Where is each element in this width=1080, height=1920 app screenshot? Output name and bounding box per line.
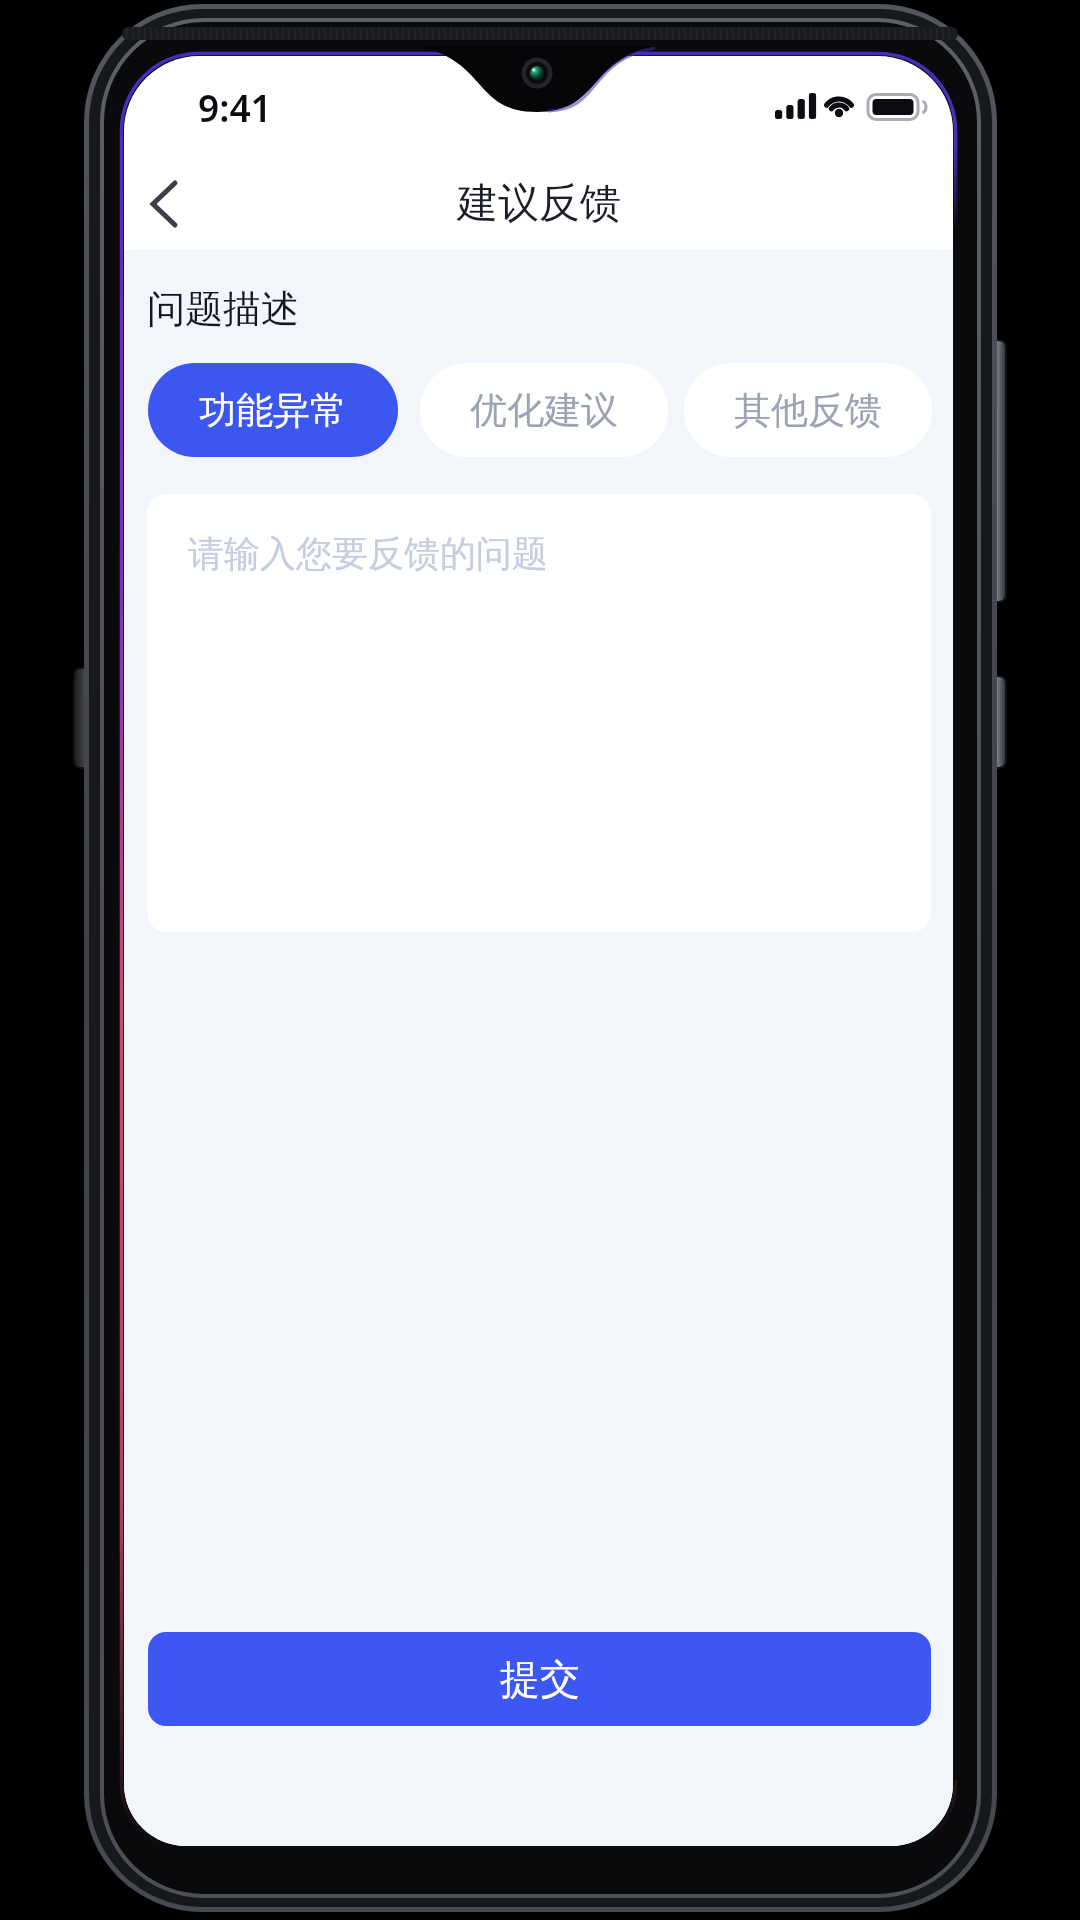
- staticText: 其他反馈: [734, 387, 882, 434]
- button[interactable]: [132, 166, 196, 242]
- button[interactable]: 请输入您要反馈的问题: [147, 494, 931, 932]
- staticText: 问题描述: [147, 285, 299, 333]
- button[interactable]: 其他反馈: [684, 363, 932, 457]
- staticText: 建议反馈: [457, 178, 621, 230]
- staticText: 请输入您要反馈的问题: [188, 531, 548, 576]
- staticText: 优化建议: [470, 387, 618, 434]
- button[interactable]: 提交: [148, 1632, 931, 1726]
- button[interactable]: 功能异常: [148, 363, 398, 457]
- staticText: 功能异常: [199, 387, 347, 434]
- staticText: 9:41: [198, 82, 272, 130]
- staticText: 提交: [500, 1654, 580, 1704]
- button[interactable]: 优化建议: [420, 363, 668, 457]
